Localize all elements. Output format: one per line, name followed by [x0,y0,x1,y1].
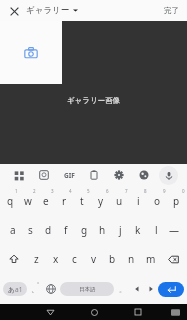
button[interactable]: テーマ [134,165,154,185]
staticText: 7 [125,188,128,194]
button[interactable]: あ [3,282,27,296]
staticText: i [137,194,140,208]
staticText: l [155,223,158,237]
staticText: 、 [31,284,39,294]
staticText: GIF [64,171,75,180]
button[interactable]: クリップボード [84,165,104,185]
button[interactable]: 言語切り替え [42,276,60,302]
staticText: 。 [119,285,126,294]
button[interactable]: z [27,244,46,274]
staticText: n [128,252,135,266]
staticText: c [72,252,77,266]
staticText: 2 [33,188,36,194]
staticText: f [64,223,68,237]
button[interactable]: k [129,215,147,244]
staticText: d [45,223,52,237]
button[interactable]: シフト [1,244,27,274]
staticText: ギャラリー画像 [0,96,187,105]
button[interactable]: ギャラリー [26,5,78,16]
staticText: 6 [106,188,109,194]
button[interactable]: ステッカー [34,165,54,185]
staticText: a [10,223,16,237]
button[interactable]: w [19,186,37,215]
staticText: 4 [69,188,72,194]
staticText: m [146,252,156,266]
button[interactable]: h [93,215,111,244]
button[interactable]: 日本語 [60,282,114,296]
staticText: y [98,194,104,208]
staticText: 日本語 [79,286,96,293]
staticText: w [24,194,32,208]
staticText: z [34,252,39,266]
button[interactable]: 左へ [130,276,144,302]
button[interactable]: r [55,186,73,215]
button[interactable]: c [65,244,84,274]
staticText: s [28,223,33,237]
button[interactable]: キーボードを閉じる [168,305,182,319]
button[interactable]: 最近のアプリ [131,305,145,319]
button[interactable]: ギャラリー画像を選択 [0,21,62,84]
staticText: h [99,223,106,237]
staticText: e [43,194,49,208]
button[interactable]: q [1,186,19,215]
staticText: j [119,223,122,237]
staticText: g [81,223,88,237]
button[interactable]: m [141,244,160,274]
button[interactable]: f [57,215,75,244]
button[interactable]: i [129,186,148,215]
staticText: 完了 [164,6,179,15]
button[interactable]: d [39,215,57,244]
button[interactable]: 候補 [9,165,29,185]
staticText: u [116,194,123,208]
button[interactable]: t [73,186,91,215]
staticText: 8 [144,188,147,194]
button[interactable]: 完了 [162,4,181,17]
staticText: a1 [15,285,23,294]
button[interactable]: e [37,186,55,215]
staticText: ° [37,281,40,288]
staticText: 3 [51,188,54,194]
button[interactable]: l [147,215,165,244]
staticText: x [53,252,59,266]
button[interactable]: n [122,244,141,274]
staticText: 1 [15,188,18,194]
staticText: t [80,194,84,208]
staticText: b [109,252,116,266]
button[interactable]: 改行 [158,282,184,297]
staticText: — [169,223,179,237]
button[interactable]: 右へ [144,276,158,302]
button[interactable]: a [4,215,21,244]
button[interactable]: j [111,215,129,244]
button[interactable]: 閉じる [7,4,21,18]
button[interactable]: g [75,215,93,244]
button[interactable]: 、 [27,276,42,302]
button[interactable]: p [167,186,186,215]
button[interactable]: b [103,244,122,274]
button[interactable]: 戻る [43,305,57,319]
button[interactable]: s [21,215,39,244]
staticText: k [135,223,141,237]
button[interactable]: 削除 [160,244,186,274]
staticText: ギャラリー [26,5,70,16]
staticText: 5 [87,188,90,194]
staticText: v [91,252,97,266]
staticText: 9 [163,188,166,194]
button[interactable]: — [165,215,183,244]
button[interactable]: 音声入力 [159,166,178,185]
staticText: o [154,194,161,208]
button[interactable]: ホーム [87,305,101,319]
button[interactable]: v [84,244,103,274]
staticText: 0 [182,188,185,194]
button[interactable]: x [46,244,65,274]
staticText: r [62,194,67,208]
button[interactable]: y [91,186,110,215]
button[interactable]: o [148,186,167,215]
staticText: p [173,194,180,208]
staticText: q [7,194,14,208]
button[interactable]: u [110,186,129,215]
button[interactable]: 設定 [109,165,129,185]
staticText: あ [8,286,15,294]
button[interactable]: GIF [59,165,79,185]
